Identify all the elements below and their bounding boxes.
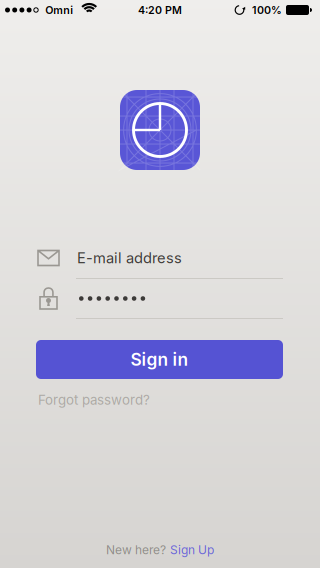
staticText: Sign in [130,349,188,370]
staticText: 100% [252,4,282,16]
button[interactable]: E-mail address [0,238,320,278]
staticText: Omni [45,4,73,16]
staticText: Forgot password? [38,392,150,408]
staticText: E-mail address [77,249,182,267]
staticText: Sign Up [170,543,214,557]
button[interactable]: Sign in [0,340,320,379]
button[interactable] [0,279,320,318]
staticText: New here? [106,543,166,557]
button[interactable]: Forgot password? [38,392,150,408]
staticText: 4:20 PM [138,4,182,16]
button[interactable]: Sign Up [170,543,214,557]
